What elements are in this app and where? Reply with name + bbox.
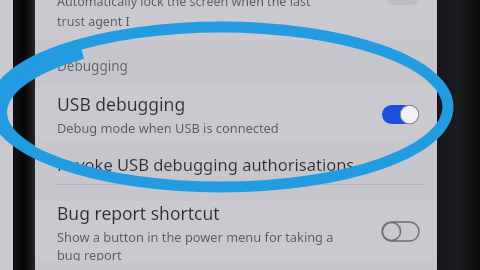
staticText: USB debugging xyxy=(57,92,186,116)
button[interactable]: Off xyxy=(382,222,419,241)
staticText: trust agent I xyxy=(57,13,130,30)
staticText: bug report xyxy=(57,246,122,261)
button[interactable]: USB debugging xyxy=(35,86,437,142)
staticText: Debugging xyxy=(57,57,128,75)
staticText: Bug report shortcut xyxy=(57,201,220,225)
button[interactable]: Revoke USB debugging authorisations xyxy=(35,144,437,184)
staticText: Show a button in the power menu for taki… xyxy=(57,228,334,245)
staticText: Automatically lock the screen when the l… xyxy=(57,0,311,10)
staticText: Debug mode when USB is connected xyxy=(57,119,279,136)
button[interactable]: Bug report shortcut xyxy=(35,201,437,261)
staticText: Revoke USB debugging authorisations xyxy=(57,153,355,175)
button[interactable]: On xyxy=(382,105,419,124)
button[interactable]: Toggle xyxy=(386,0,420,5)
